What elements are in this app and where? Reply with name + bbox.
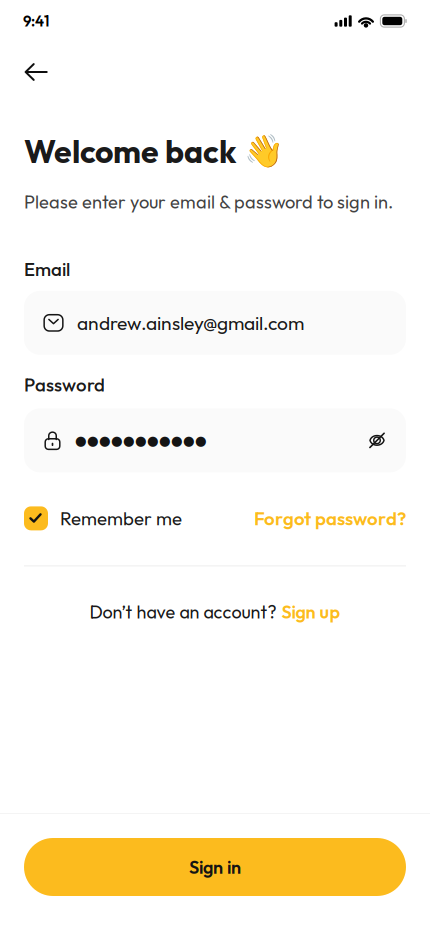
staticText: Don’t have an account? — [89, 600, 276, 623]
staticText: 👋 — [244, 132, 284, 170]
staticText: andrew.ainsley@gmail.com — [77, 311, 304, 335]
staticText: Forgot password? — [254, 507, 406, 530]
button[interactable]: Remember me — [24, 506, 182, 530]
button[interactable]: Sign in — [24, 838, 406, 896]
staticText: ●●●●●●●●●●● — [75, 433, 207, 448]
staticText: Welcome back — [24, 131, 236, 171]
staticText: Sign in — [189, 856, 241, 878]
button[interactable]: Back — [14, 50, 58, 94]
staticText: Sign up — [281, 600, 340, 623]
button[interactable]: Show password — [368, 431, 386, 449]
staticText: Please enter your email & password to si… — [24, 190, 393, 213]
button[interactable]: Forgot password? — [254, 507, 406, 530]
staticText: Remember me — [60, 507, 182, 530]
staticText: Email — [24, 257, 70, 281]
staticText: Password — [24, 373, 105, 396]
staticText: 9:41 — [23, 12, 49, 30]
button[interactable]: Sign up — [281, 600, 340, 623]
